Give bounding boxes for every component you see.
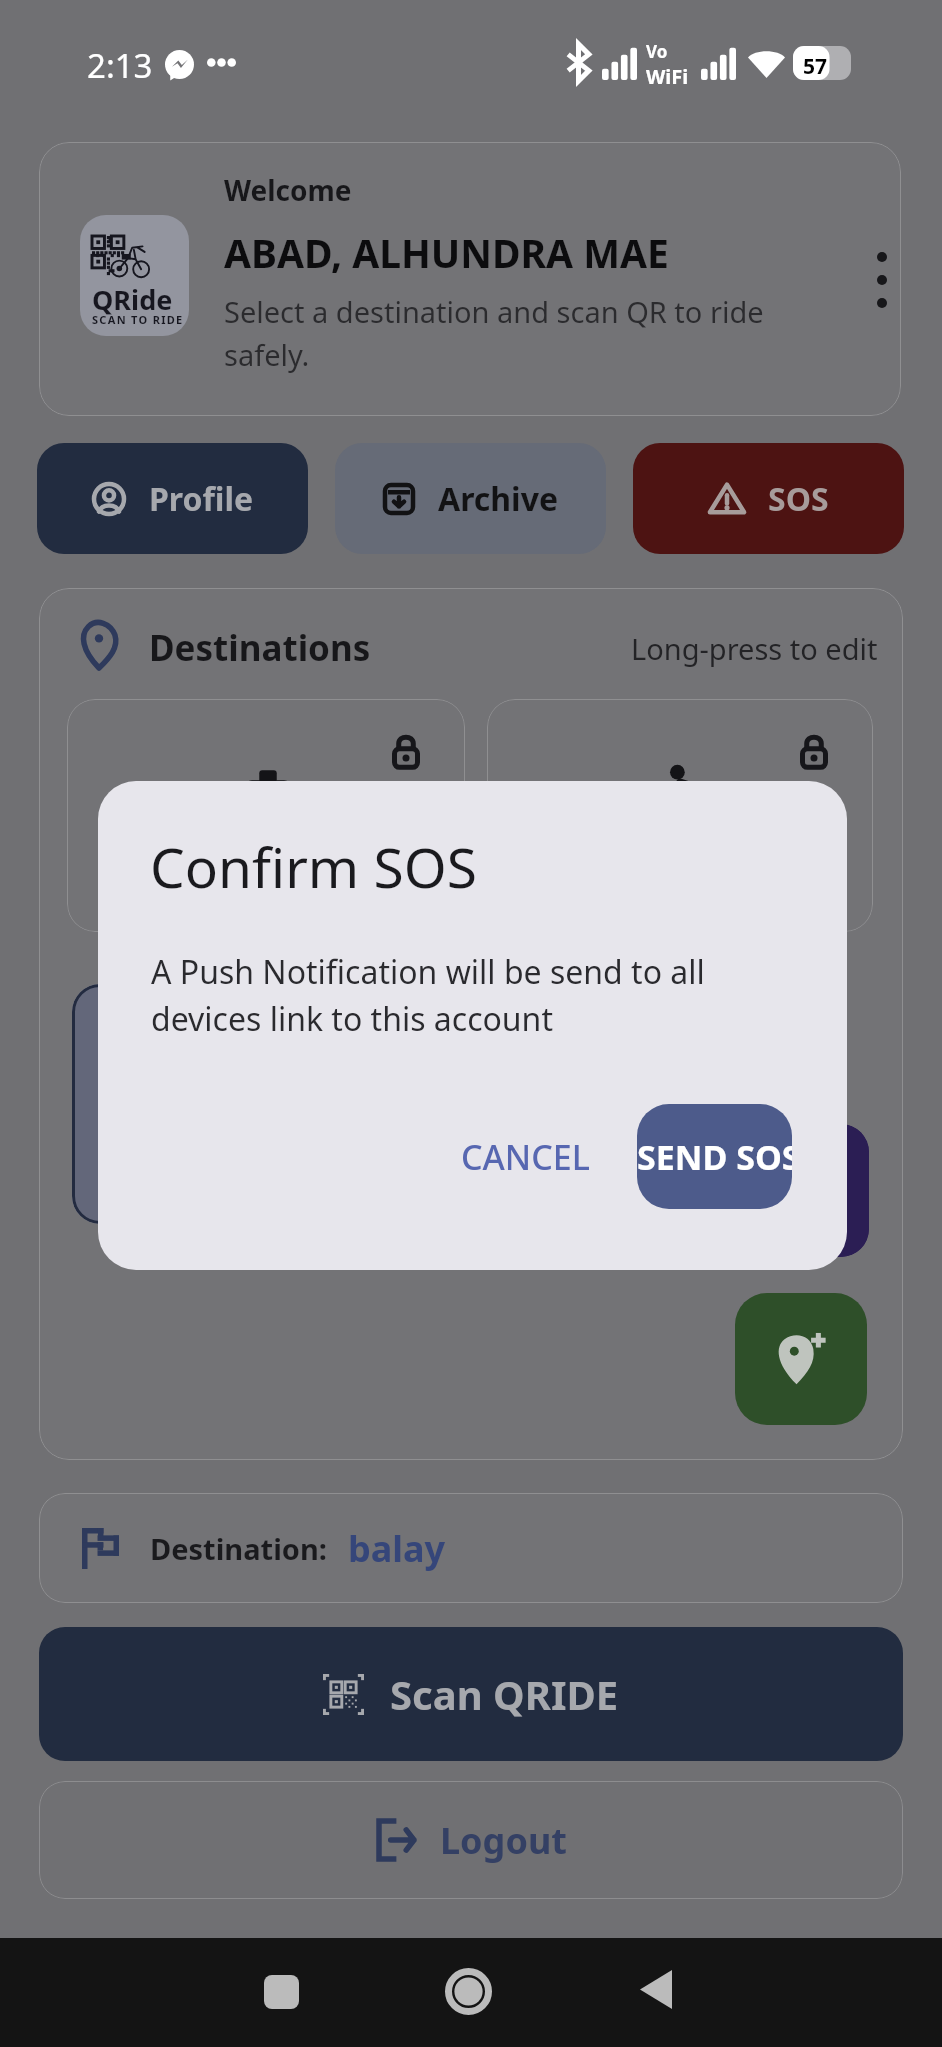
button[interactable]: Recent apps: [238, 1948, 325, 2035]
staticText: 57: [803, 52, 828, 81]
staticText: 2:13: [87, 43, 153, 88]
button[interactable]: Profile: [37, 443, 308, 554]
button[interactable]: [67, 699, 465, 932]
button[interactable]: Logout: [39, 1781, 903, 1899]
staticText: CANCEL: [461, 1134, 590, 1180]
staticText: Long-press to edit: [631, 629, 878, 668]
staticText: Welcome: [224, 171, 352, 209]
button[interactable]: Destination:: [39, 1493, 903, 1603]
button[interactable]: QRide: [39, 142, 901, 416]
staticText: SCAN TO RIDE: [92, 312, 184, 327]
button[interactable]: [487, 1124, 869, 1257]
button[interactable]: [72, 984, 468, 1224]
staticText: QRide: [92, 281, 173, 318]
staticText: SOS: [768, 477, 829, 521]
staticText: Profile: [149, 477, 254, 521]
staticText: ABAD, ALHUNDRA MAE: [224, 226, 669, 279]
button[interactable]: CANCEL: [456, 1104, 594, 1209]
staticText: SEND SOS: [637, 1134, 792, 1180]
button[interactable]: Home: [425, 1948, 512, 2035]
button[interactable]: SOS: [633, 443, 904, 554]
staticText: Confirm SOS: [150, 829, 477, 904]
staticText: Scan QRIDE: [390, 1667, 619, 1721]
staticText: Select a destination and scan QR to ride…: [224, 292, 784, 374]
staticText: balay: [348, 1524, 446, 1573]
staticText: WiFi: [646, 63, 689, 90]
staticText: Vo: [646, 40, 668, 63]
button[interactable]: [487, 699, 873, 932]
staticText: A Push Notification will be send to all …: [151, 950, 731, 1040]
staticText: Destinations: [149, 624, 371, 672]
button[interactable]: Add destination: [735, 1293, 867, 1425]
staticText: Archive: [438, 477, 559, 521]
button[interactable]: Archive: [335, 443, 606, 554]
staticText: Destination:: [150, 1529, 327, 1568]
button[interactable]: Scan QRIDE: [39, 1627, 903, 1761]
button[interactable]: SEND SOS: [637, 1104, 792, 1209]
button[interactable]: More options: [844, 242, 901, 318]
button[interactable]: Back: [612, 1946, 699, 2033]
staticText: Logout: [440, 1816, 567, 1865]
